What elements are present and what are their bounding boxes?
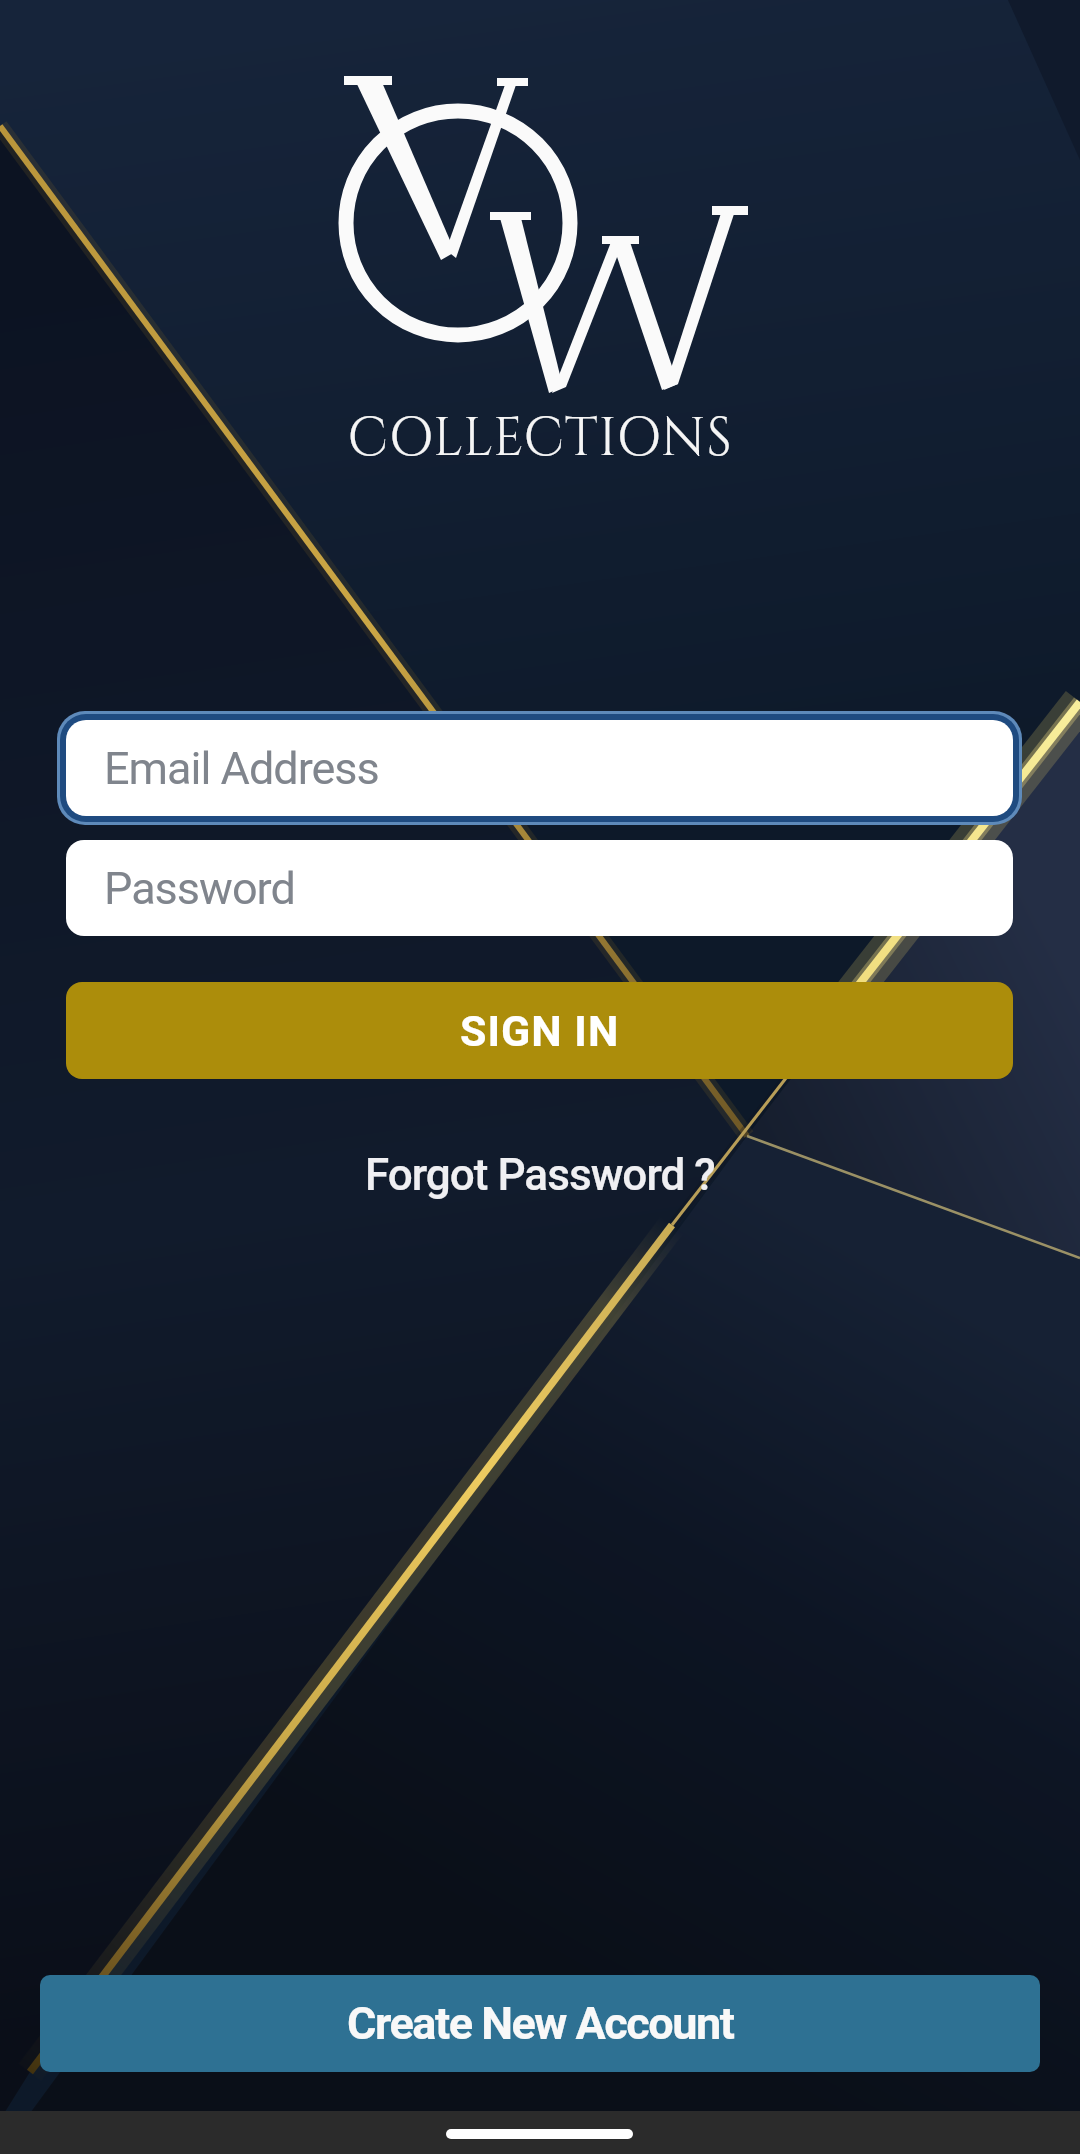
staticText: COLLECTIONS [0,403,1080,474]
staticText: Email Address [104,742,379,795]
button[interactable]: Email Address [66,720,1013,816]
staticText: Password [104,862,295,915]
button[interactable]: Password [66,840,1013,936]
staticText: Create New Account [347,1997,734,2050]
button[interactable]: Forgot Password ? [365,1149,715,1201]
button[interactable]: SIGN IN [66,982,1013,1079]
staticText: SIGN IN [460,1006,620,1056]
button[interactable]: Create New Account [40,1975,1040,2072]
